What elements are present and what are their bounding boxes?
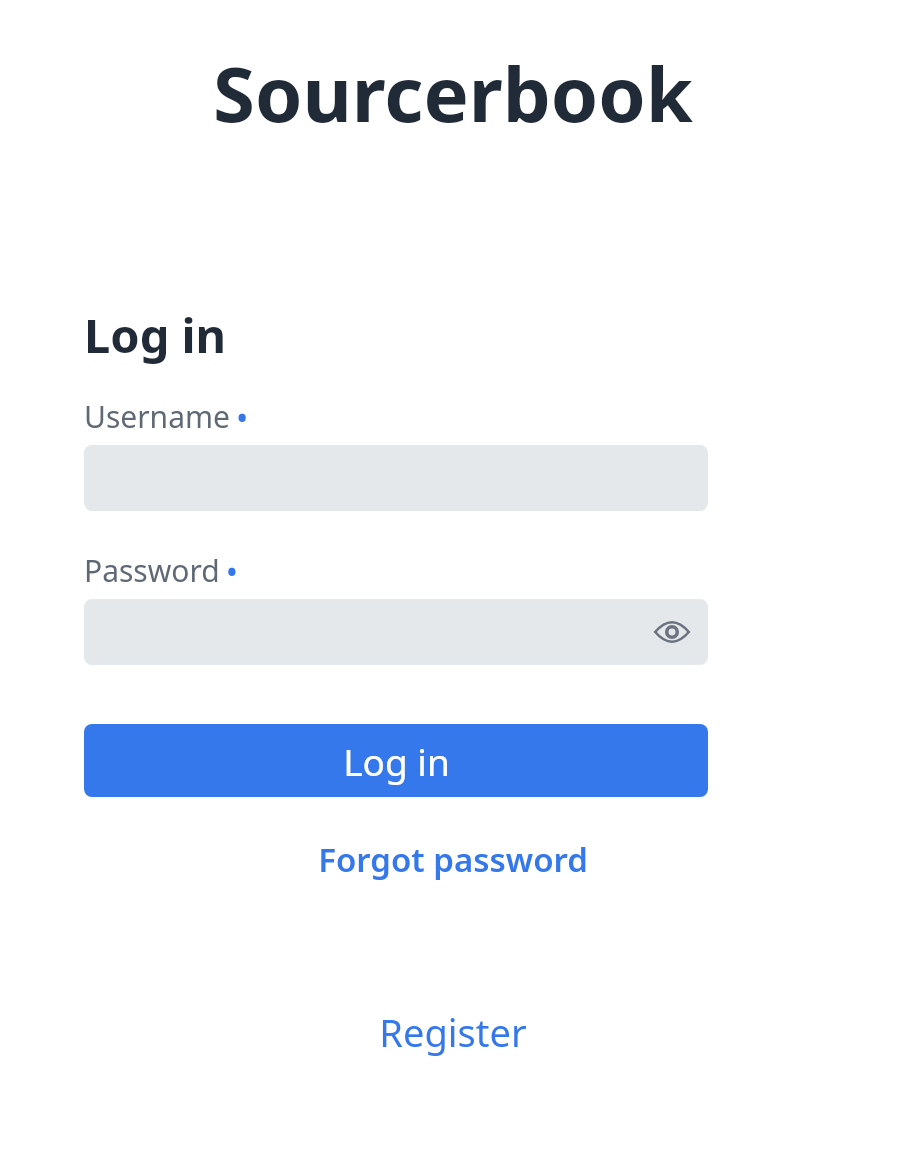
staticText: Log in [343, 736, 450, 786]
button[interactable]: Password input field [84, 599, 708, 665]
staticText: Forgot password [318, 837, 588, 882]
staticText: Password • [84, 550, 237, 591]
button[interactable]: Log in [84, 724, 708, 797]
staticText: Sourcerbook [0, 41, 906, 145]
staticText: Log in [84, 303, 227, 367]
staticText: Username • [84, 396, 248, 437]
button[interactable]: Register [0, 1002, 906, 1062]
button[interactable]: Show password [648, 608, 696, 656]
button[interactable]: Forgot password [0, 831, 906, 887]
staticText: Register [379, 1006, 527, 1058]
